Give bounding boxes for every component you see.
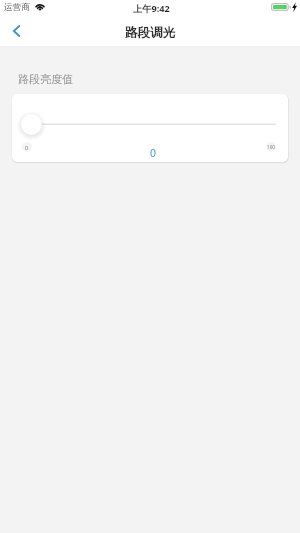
staticText: 0 [150, 146, 157, 160]
staticText: 100 [267, 144, 275, 150]
staticText: 路段调光 [125, 25, 175, 41]
staticText: 路段亮度值 [18, 72, 73, 86]
button[interactable]: Back [2, 18, 30, 44]
staticText: 运营商 [4, 2, 30, 13]
staticText: 上午9:42 [133, 2, 170, 15]
button[interactable]: Brightness slider [16, 109, 47, 140]
staticText: 0 [25, 144, 29, 151]
